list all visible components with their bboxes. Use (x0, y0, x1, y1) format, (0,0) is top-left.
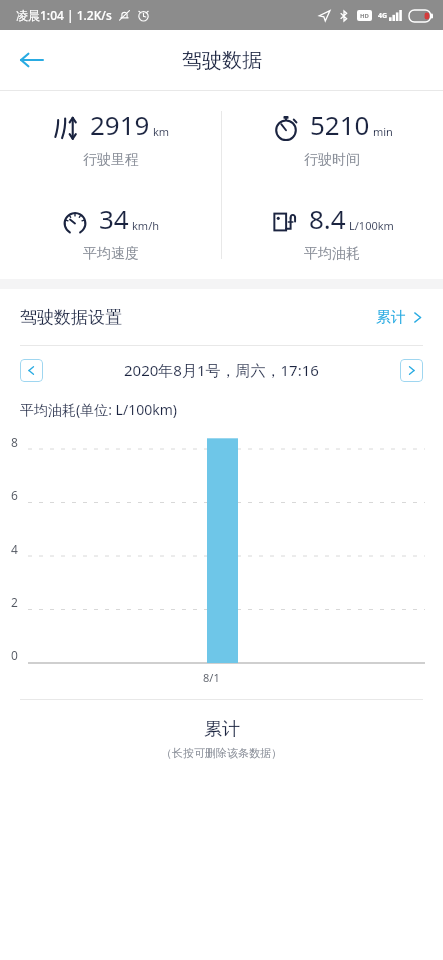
button[interactable]: 5210 (221, 91, 443, 185)
staticText: 平均油耗(单位: L/100km) (20, 400, 177, 419)
staticText: 累计 (376, 308, 406, 327)
staticText: 0 (11, 647, 18, 663)
staticText: 8/1 (203, 670, 220, 685)
staticText: min (373, 124, 393, 139)
staticText: HD (360, 12, 369, 20)
staticText: （长按可删除该条数据） (161, 746, 282, 760)
button[interactable]: 8.4 (221, 185, 443, 279)
button[interactable]: Next day (400, 359, 423, 382)
staticText: L/100km (349, 218, 394, 233)
staticText: km (153, 124, 170, 139)
staticText: 6 (11, 487, 18, 503)
button[interactable]: 累计 (161, 718, 282, 760)
staticText: 2 (11, 594, 18, 610)
button[interactable]: 驾驶数据设置 (0, 289, 443, 345)
staticText: 8 (11, 434, 18, 450)
staticText: 4 (11, 541, 18, 557)
staticText: 驾驶数据 (182, 48, 262, 73)
staticText: 4G (378, 11, 388, 21)
staticText: 34 (99, 201, 129, 236)
staticText: 平均速度 (83, 245, 139, 263)
staticText: 2020年8月1号，周六，17:16 (124, 360, 319, 380)
button[interactable]: Previous day (20, 359, 43, 382)
staticText: 凌晨1:04 | 1.2K/s (16, 7, 112, 23)
staticText: 2919 (90, 107, 150, 142)
staticText: 行驶时间 (304, 151, 360, 169)
staticText: 行驶里程 (83, 151, 139, 169)
button[interactable]: 2919 (0, 91, 221, 185)
staticText: km/h (132, 218, 160, 233)
staticText: 平均油耗 (304, 245, 360, 263)
staticText: 累计 (204, 718, 240, 741)
staticText: 5210 (310, 107, 370, 142)
button[interactable]: 34 (0, 185, 221, 279)
staticText: 8.4 (309, 201, 346, 236)
button[interactable]: Back (8, 36, 56, 84)
staticText: 驾驶数据设置 (20, 307, 122, 328)
